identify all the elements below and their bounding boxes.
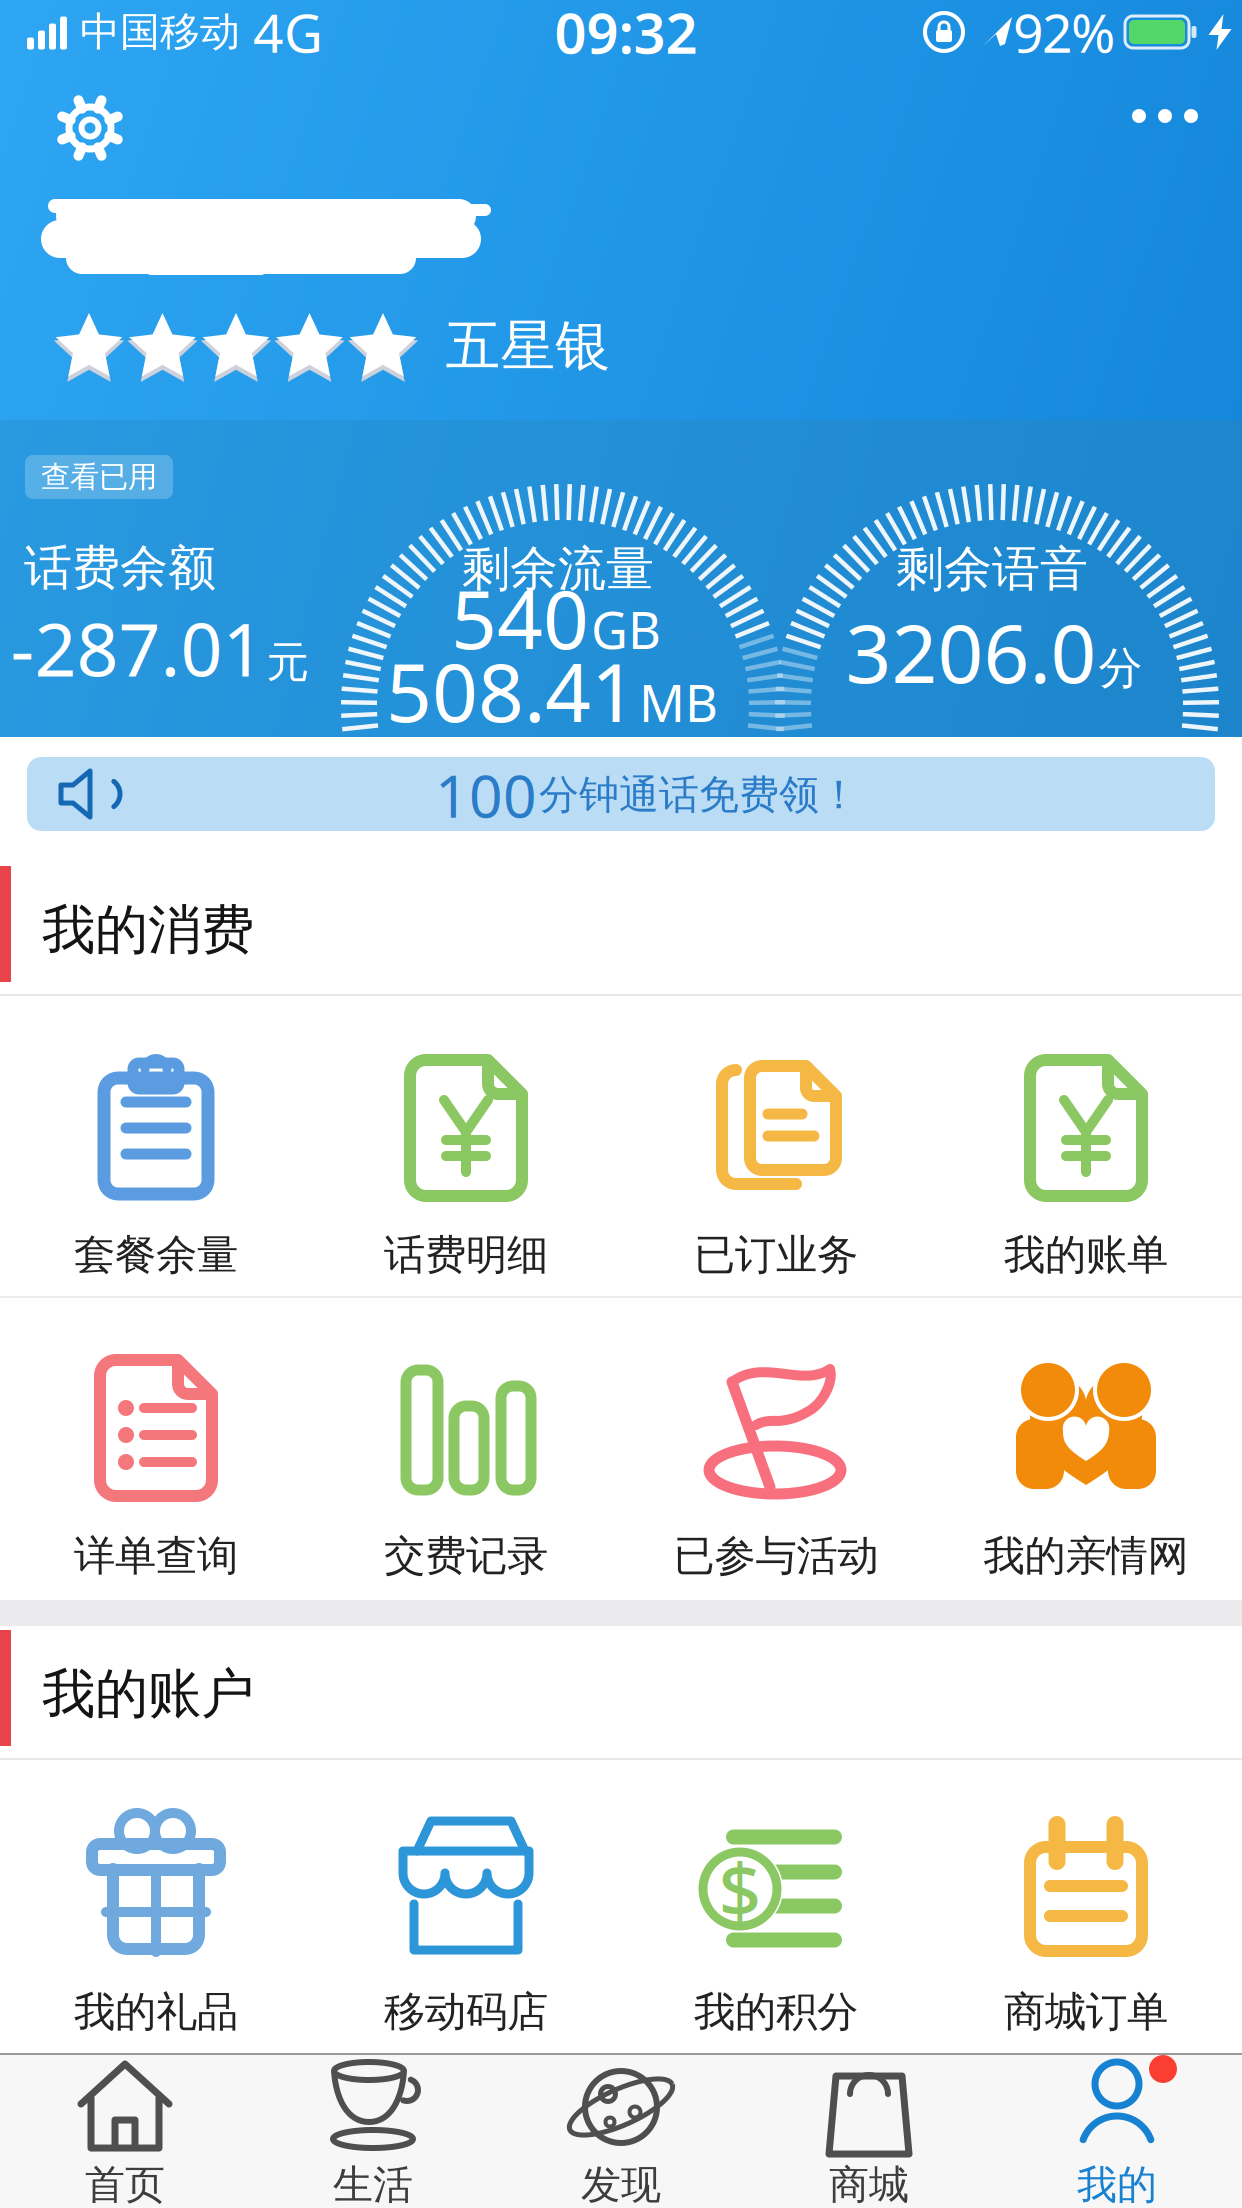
staticText: 查看已用 bbox=[41, 459, 157, 495]
staticText: 详单查询 bbox=[74, 1531, 238, 1581]
button[interactable]: 发现 bbox=[497, 2055, 745, 2208]
staticText: $ bbox=[718, 1839, 761, 1939]
button[interactable]: 100 bbox=[27, 757, 1215, 831]
button[interactable]: 已参与活动 bbox=[621, 1298, 931, 1600]
staticText: 分 bbox=[1098, 641, 1142, 695]
staticText: 分钟通话免费领！ bbox=[539, 770, 859, 819]
button[interactable]: 我的亲情网 bbox=[931, 1298, 1241, 1600]
staticText: 100 bbox=[435, 756, 537, 834]
staticText: 话费明细 bbox=[384, 1230, 548, 1280]
staticText: 已参与活动 bbox=[673, 1531, 878, 1581]
staticText: 92% bbox=[1013, 0, 1115, 67]
staticText: 剩余流量 bbox=[462, 539, 654, 598]
button[interactable]: 我的 bbox=[993, 2055, 1241, 2208]
staticText: 剩余语音 bbox=[896, 539, 1088, 598]
button[interactable]: 已订业务 bbox=[621, 996, 931, 1298]
staticText: 540 bbox=[451, 565, 589, 671]
staticText: 我的积分 bbox=[694, 1987, 858, 2037]
button[interactable]: 商城订单 bbox=[931, 1760, 1241, 2053]
staticText: 我的账单 bbox=[1004, 1230, 1168, 1280]
button[interactable]: Settings bbox=[56, 94, 124, 162]
staticText: 首页 bbox=[85, 2160, 165, 2208]
button[interactable]: 详单查询 bbox=[1, 1298, 311, 1600]
button[interactable]: 查看已用 bbox=[25, 455, 173, 499]
staticText: 中国移动 bbox=[80, 7, 240, 56]
staticText: 商城订单 bbox=[1004, 1987, 1168, 2037]
staticText: 套餐余量 bbox=[74, 1230, 238, 1280]
staticText: 我的 bbox=[1077, 2160, 1157, 2208]
staticText: 508.41 bbox=[386, 638, 637, 744]
button[interactable]: 商城 bbox=[745, 2055, 993, 2208]
button[interactable]: More bbox=[1119, 91, 1211, 141]
button[interactable]: $ bbox=[621, 1760, 931, 2053]
staticText: -287.01 bbox=[10, 599, 264, 697]
staticText: 3206.0 bbox=[845, 599, 1096, 705]
staticText: 09:32 bbox=[554, 0, 697, 69]
button[interactable]: 套餐余量 bbox=[1, 996, 311, 1298]
button[interactable]: 移动码店 bbox=[311, 1760, 621, 2053]
button[interactable]: 首页 bbox=[1, 2055, 249, 2208]
staticText: GB bbox=[591, 596, 661, 663]
staticText: 我的礼品 bbox=[74, 1987, 238, 2037]
staticText: 我的亲情网 bbox=[983, 1531, 1188, 1581]
staticText: 商城 bbox=[829, 2160, 909, 2208]
staticText: 生活 bbox=[333, 2160, 413, 2208]
button[interactable]: 我的账单 bbox=[931, 996, 1241, 1298]
staticText: 我的消费 bbox=[42, 897, 254, 963]
staticText: 交费记录 bbox=[384, 1531, 548, 1581]
staticText: 发现 bbox=[581, 2160, 661, 2208]
staticText: 已订业务 bbox=[694, 1230, 858, 1280]
staticText: 我的账户 bbox=[42, 1661, 254, 1727]
staticText: 4G bbox=[253, 0, 323, 67]
staticText: MB bbox=[639, 669, 718, 736]
staticText: 五星银 bbox=[445, 312, 610, 379]
button[interactable]: 生活 bbox=[249, 2055, 497, 2208]
staticText: 话费余额 bbox=[24, 538, 216, 597]
staticText: 元 bbox=[266, 636, 309, 688]
staticText: 移动码店 bbox=[384, 1987, 548, 2037]
button[interactable]: 话费明细 bbox=[311, 996, 621, 1298]
button[interactable]: 交费记录 bbox=[311, 1298, 621, 1600]
button[interactable]: 我的礼品 bbox=[1, 1760, 311, 2053]
